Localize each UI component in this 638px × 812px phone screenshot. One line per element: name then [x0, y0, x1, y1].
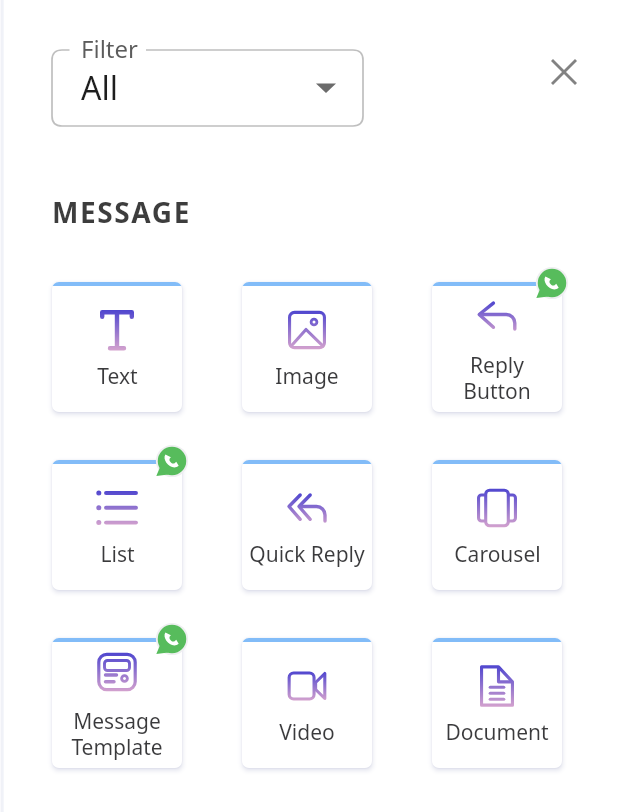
button[interactable]: Image — [242, 282, 372, 412]
button[interactable]: Close — [540, 48, 588, 96]
button[interactable]: Filter — [52, 50, 363, 126]
staticText: Document — [445, 718, 549, 747]
other: Available on WhatsApp — [533, 264, 571, 302]
button[interactable]: Video — [242, 638, 372, 768]
staticText: Image — [275, 362, 339, 391]
staticText: All — [81, 66, 118, 110]
staticText: Video — [279, 718, 335, 747]
button[interactable]: Quick Reply — [242, 460, 372, 590]
staticText: List — [100, 540, 135, 569]
other: Available on WhatsApp — [153, 620, 191, 658]
button[interactable]: Message Template — [52, 638, 182, 768]
button[interactable]: Text — [52, 282, 182, 412]
button[interactable]: Document — [432, 638, 562, 768]
staticText: Quick Reply — [249, 540, 365, 569]
button[interactable]: Carousel — [432, 460, 562, 590]
staticText: Carousel — [454, 540, 541, 569]
staticText: Filter — [81, 32, 138, 65]
staticText: Text — [97, 362, 138, 391]
button[interactable]: List — [52, 460, 182, 590]
staticText: Reply Button — [463, 351, 531, 405]
staticText: MESSAGE — [52, 193, 191, 231]
other: Available on WhatsApp — [153, 442, 191, 480]
button[interactable]: Reply Button — [432, 282, 562, 412]
staticText: Message Template — [71, 707, 163, 761]
